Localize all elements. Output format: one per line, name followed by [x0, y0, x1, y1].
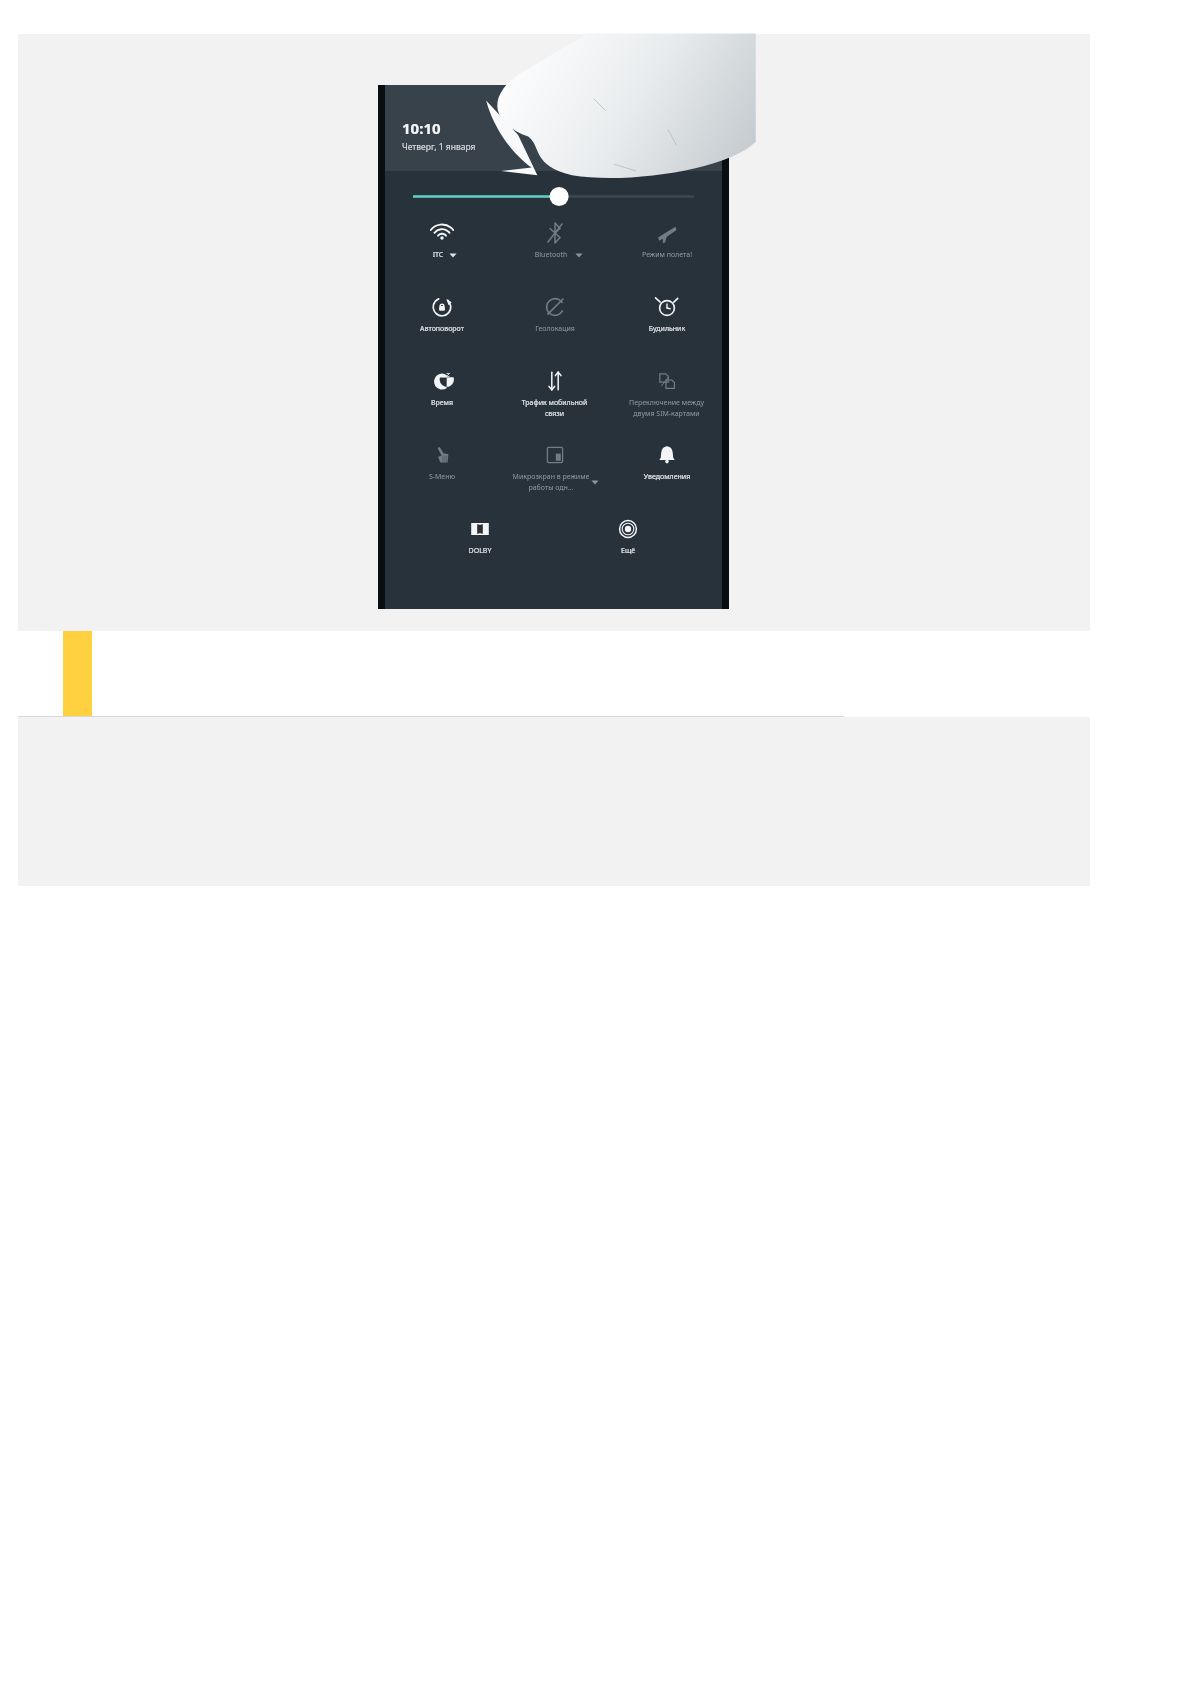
other: Bluetooth [543, 221, 567, 245]
button[interactable]: Микрозкран в режиме работы одн... [502, 437, 607, 492]
other: Режим полета! [655, 221, 679, 245]
other: Автоповорот [430, 295, 454, 319]
button[interactable]: Будильник [614, 289, 719, 334]
button[interactable]: ITC [389, 215, 494, 260]
button[interactable]: Ещё [586, 511, 670, 556]
other: Будильник [655, 295, 679, 319]
other: Время [430, 369, 454, 393]
button[interactable]: Время [389, 363, 494, 408]
staticText: Трафик мобильной связи [512, 398, 597, 418]
button[interactable]: DOLBY [438, 511, 522, 556]
button[interactable]: S-Меню [389, 437, 494, 482]
button[interactable]: Bluetooth [502, 215, 607, 260]
staticText: Ещё [608, 546, 648, 556]
staticText: Геолокация [510, 324, 600, 334]
button[interactable]: Уведомления [614, 437, 719, 482]
staticText: S-Меню [397, 472, 487, 482]
other: Трафик мобильной связи [543, 369, 567, 393]
staticText: Микрозкран в режиме работы одн... [511, 472, 591, 492]
button[interactable]: Brightness [385, 171, 722, 215]
button[interactable]: Режим полета! [614, 215, 719, 260]
staticText: Переключение между двумя SIM-картами [619, 398, 714, 418]
button[interactable]: Трафик мобильной связи [502, 363, 607, 418]
other: Уведомления [655, 443, 679, 467]
button[interactable]: Переключение между двумя SIM-картами [614, 363, 719, 418]
staticText: Четверг, 1 января [402, 141, 476, 153]
staticText: ITC [427, 250, 449, 260]
staticText: Будильник [622, 324, 712, 334]
button[interactable]: Геолокация [502, 289, 607, 334]
other: Переключение между двумя SIM-картами [655, 369, 679, 393]
other: S-Меню [430, 443, 454, 467]
staticText: 10:10 [402, 118, 441, 138]
staticText: Автоповорот [397, 324, 487, 334]
staticText: DOLBY [450, 546, 510, 556]
other: ITC [430, 221, 454, 245]
other: Геолокация [543, 295, 567, 319]
button[interactable]: Автоповорот [389, 289, 494, 334]
staticText: Уведомления [622, 472, 712, 482]
staticText: Время [397, 398, 487, 408]
staticText: Bluetooth [527, 250, 575, 260]
staticText: Режим полета! [622, 250, 712, 260]
other: Микрозкран в режиме работы одн... [543, 443, 567, 467]
other: DOLBY [468, 517, 492, 541]
other: Ещё [616, 517, 640, 541]
